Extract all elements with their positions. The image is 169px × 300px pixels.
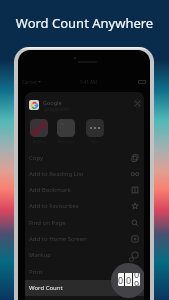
button[interactable]: Markup	[25, 247, 144, 263]
button[interactable]: Add to Home Screen	[25, 231, 144, 247]
staticText: Google	[43, 99, 62, 106]
staticText: Add to Home Screen	[29, 235, 87, 243]
staticText: Markup	[29, 251, 51, 259]
button[interactable]: Copy	[25, 150, 144, 166]
button[interactable]: Find on Page	[25, 215, 144, 231]
button[interactable]: Add to Reading List	[25, 166, 144, 182]
button[interactable]: Messages	[57, 119, 75, 137]
button[interactable]: AirDrop	[30, 119, 48, 137]
staticText: Word Count Anywhere	[0, 14, 169, 32]
staticText: 9:41 AM	[80, 79, 98, 85]
button[interactable]: Word Count	[25, 280, 144, 296]
button[interactable]: Add Bookmark	[25, 182, 144, 198]
staticText: google.com	[44, 106, 69, 112]
staticText: 9	[134, 278, 140, 286]
staticText: Carrier	[22, 79, 37, 85]
button[interactable]: More	[86, 119, 104, 137]
staticText: Add to Reading List	[29, 170, 84, 178]
button[interactable]: Word Count	[111, 263, 144, 298]
staticText: 0	[134, 273, 140, 280]
staticText: 0	[118, 274, 124, 286]
staticText: Add Bookmark	[29, 186, 71, 194]
button[interactable]: Add to Favourites	[25, 198, 144, 214]
staticText: Print	[29, 268, 43, 276]
staticText: Add to Favourites	[29, 202, 79, 210]
staticText: Find on Page	[29, 219, 66, 227]
staticText: More	[91, 139, 100, 144]
button[interactable]: Print	[25, 264, 144, 280]
staticText: Word Count	[29, 284, 63, 292]
staticText: Copy	[29, 154, 44, 162]
staticText: Messages	[58, 139, 75, 144]
staticText: 0	[126, 274, 132, 286]
button[interactable]: Close	[133, 99, 142, 108]
